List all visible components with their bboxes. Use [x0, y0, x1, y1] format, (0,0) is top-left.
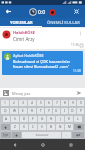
button[interactable]: 9 — [69, 100, 76, 106]
button[interactable]: P — [77, 108, 84, 114]
button[interactable]: 1 — [1, 100, 9, 106]
button[interactable]: Y — [45, 108, 52, 114]
staticText: X — [23, 125, 25, 129]
button[interactable]: Send — [75, 89, 83, 97]
staticText: M — [68, 125, 71, 129]
button[interactable]: S — [11, 116, 19, 122]
staticText: 0:0 — [38, 9, 46, 16]
button[interactable]: B — [47, 124, 55, 130]
button[interactable]: T — [37, 108, 44, 114]
button[interactable]: Attach image — [2, 89, 10, 97]
staticText: F — [32, 117, 34, 121]
staticText: 0 — [80, 101, 82, 105]
staticText: 6 — [48, 101, 50, 105]
staticText: Z — [14, 125, 16, 129]
button[interactable]: J — [56, 116, 64, 122]
button[interactable]: A — [3, 116, 10, 122]
button[interactable]: HabibKÖSE — [2, 30, 83, 47]
button[interactable]: O — [69, 108, 76, 114]
staticText: O — [71, 109, 74, 113]
button[interactable]: R — [28, 108, 36, 114]
staticText: ÖNEMLİ KULLAR — [47, 20, 80, 25]
button[interactable]: W — [10, 108, 18, 114]
staticText: 5 — [40, 101, 42, 105]
button[interactable]: D — [20, 116, 28, 122]
staticText: K — [68, 117, 70, 121]
button[interactable]: Z — [11, 124, 19, 130]
button[interactable]: Enter — [72, 132, 84, 138]
button[interactable]: Sym — [1, 132, 11, 138]
staticText: 8 — [64, 101, 66, 105]
button[interactable]: K — [65, 116, 73, 122]
button[interactable]: 7 — [53, 100, 60, 106]
staticText: Cimri Arzy — [13, 36, 35, 42]
button[interactable]: 2 — [10, 100, 18, 106]
button[interactable]: 5 — [37, 100, 44, 106]
staticText: 1 — [4, 101, 6, 105]
button[interactable]: Back — [3, 6, 14, 17]
staticText: 4 — [31, 101, 33, 105]
staticText: R — [31, 109, 33, 113]
staticText: D — [23, 117, 26, 121]
button[interactable]: More options — [71, 6, 82, 17]
button[interactable]: Back — [0, 139, 29, 150]
staticText: W — [13, 109, 16, 113]
button[interactable]: Shift — [1, 124, 10, 130]
staticText: T — [40, 109, 42, 113]
button[interactable]: U — [53, 108, 60, 114]
button[interactable]: M — [65, 124, 73, 130]
staticText: J — [60, 117, 61, 121]
staticText: B — [50, 125, 53, 129]
button[interactable]: Space — [22, 132, 61, 138]
button[interactable]: 0 — [77, 100, 84, 106]
staticText: Sym — [3, 133, 9, 137]
button[interactable]: X — [20, 124, 28, 130]
button[interactable]: 3 — [19, 100, 27, 106]
button[interactable]: Options — [77, 30, 83, 36]
button[interactable]: YORUMLAR — [0, 18, 42, 26]
button[interactable]: ÖNEMLİ KULLAR — [42, 18, 85, 26]
staticText: P — [80, 109, 82, 113]
button[interactable]: E — [19, 108, 27, 114]
staticText: V — [41, 125, 43, 129]
button[interactable]: Backspace — [74, 124, 84, 130]
button[interactable]: Q — [1, 108, 9, 114]
button[interactable]: 8 — [61, 100, 68, 106]
button[interactable]: Settings — [12, 132, 21, 138]
staticText: 9 — [72, 101, 74, 105]
staticText: N — [59, 125, 62, 129]
staticText: Q — [4, 109, 7, 113]
button[interactable]: G — [38, 116, 46, 122]
staticText: C — [32, 125, 35, 129]
button[interactable]: F — [29, 116, 37, 122]
staticText: 2 — [13, 101, 15, 105]
staticText: fosan sitesi Bonsadosad2 .com" — [13, 64, 70, 69]
staticText: 11:38 — [73, 69, 81, 73]
button[interactable]: N — [56, 124, 64, 130]
button[interactable]: Alert — [48, 8, 56, 16]
button[interactable]: Home — [29, 139, 57, 150]
button[interactable]: 6 — [45, 100, 52, 106]
staticText: S — [14, 117, 16, 121]
button[interactable]: Recent apps — [57, 139, 85, 150]
staticText: Aykut HabibKÖSE — [13, 53, 44, 58]
staticText: 3 — [22, 101, 24, 105]
staticText: . — [66, 133, 67, 137]
button[interactable]: I — [61, 108, 68, 114]
button[interactable]: C — [29, 124, 37, 130]
button[interactable]: Aykut HabibKÖSE — [4, 53, 81, 73]
button[interactable]: H — [47, 116, 55, 122]
button[interactable]: V — [38, 124, 46, 130]
button[interactable]: Mesaj yaz — [12, 91, 75, 96]
button[interactable]: 4 — [28, 100, 36, 106]
staticText: Mesaj yaz — [12, 91, 31, 96]
staticText: H — [50, 117, 53, 121]
staticText: A — [5, 117, 8, 121]
staticText: 11:36 — [71, 43, 79, 47]
button[interactable]: L — [74, 116, 82, 122]
staticText: YORUMLAR — [10, 20, 33, 25]
staticText: Y — [48, 109, 50, 113]
staticText: L — [77, 117, 79, 121]
staticText: HabibKÖSE — [13, 30, 35, 35]
